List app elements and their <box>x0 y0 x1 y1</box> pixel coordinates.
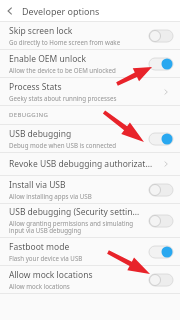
button[interactable]: Open <box>158 84 174 100</box>
staticText: Debug mode when USB is connected <box>9 141 117 149</box>
button[interactable]: Process Stats <box>0 78 180 105</box>
staticText: Revoke USB debugging authorizations <box>9 158 154 170</box>
button[interactable]: Toggle on <box>148 245 174 259</box>
button[interactable]: Open <box>158 156 174 172</box>
button[interactable]: Enable OEM unlock <box>0 50 180 77</box>
button[interactable]: Allow mock locations <box>0 266 180 293</box>
button[interactable]: Toggle off <box>148 214 174 228</box>
staticText: DEBUGGING <box>9 111 49 119</box>
button[interactable]: Fastboot mode <box>0 238 180 265</box>
staticText: Allow mock locations <box>9 269 93 281</box>
staticText: USB debugging (Security settings) <box>9 206 144 218</box>
staticText: Allow mock locations <box>9 282 70 290</box>
staticText: Allow installing apps via USB <box>9 192 92 200</box>
button[interactable]: Install via USB <box>0 176 180 203</box>
staticText: Allow granting permissions and simulatin… <box>9 219 144 235</box>
staticText: USB debugging <box>9 128 72 140</box>
staticText: Developer options <box>22 5 100 17</box>
staticText: Go directly to Home screen from wake <box>9 38 121 46</box>
staticText: Install via USB <box>9 179 66 191</box>
button[interactable]: USB debugging <box>0 125 180 152</box>
staticText: Geeky stats about running processes <box>9 94 117 102</box>
button[interactable]: Toggle off <box>148 29 174 43</box>
staticText: Skip screen lock <box>9 25 73 37</box>
staticText: Process Stats <box>9 81 62 93</box>
button[interactable]: Toggle off <box>148 273 174 287</box>
button[interactable]: Revoke USB debugging authorizations <box>0 153 180 175</box>
staticText: Fastboot mode <box>9 241 70 253</box>
staticText: Allow the device to be OEM unlocked <box>9 66 116 74</box>
button[interactable]: Toggle on <box>148 132 174 146</box>
button[interactable]: USB debugging (Security settings) <box>0 204 180 237</box>
staticText: Flash your device via USB <box>9 254 83 262</box>
staticText: Enable OEM unlock <box>9 53 86 65</box>
button[interactable]: Toggle on <box>148 57 174 71</box>
button[interactable]: Back <box>0 0 20 21</box>
button[interactable]: Toggle off <box>148 183 174 197</box>
button[interactable]: Skip screen lock <box>0 22 180 49</box>
